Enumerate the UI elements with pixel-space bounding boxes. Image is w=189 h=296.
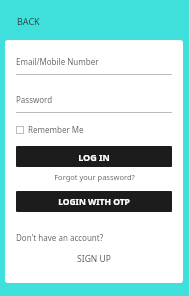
button[interactable]: BACK bbox=[13, 12, 44, 30]
button[interactable]: LOGIN WITH OTP bbox=[16, 191, 172, 212]
staticText: Email/Mobile Number bbox=[16, 56, 99, 67]
staticText: Forgot your password? bbox=[54, 172, 135, 182]
button[interactable]: Remember Me bbox=[16, 122, 84, 137]
staticText: SIGN UP bbox=[77, 253, 111, 265]
staticText: BACK bbox=[17, 15, 40, 27]
staticText: Remember Me bbox=[28, 124, 84, 135]
staticText: LOGIN WITH OTP bbox=[58, 196, 130, 208]
button[interactable]: Forgot your password? bbox=[16, 172, 172, 182]
button[interactable]: LOG IN bbox=[16, 146, 172, 167]
button[interactable]: SIGN UP bbox=[16, 253, 172, 265]
staticText: Password bbox=[16, 94, 53, 105]
staticText: Don't have an account? bbox=[16, 232, 104, 243]
staticText: LOG IN bbox=[78, 151, 110, 163]
